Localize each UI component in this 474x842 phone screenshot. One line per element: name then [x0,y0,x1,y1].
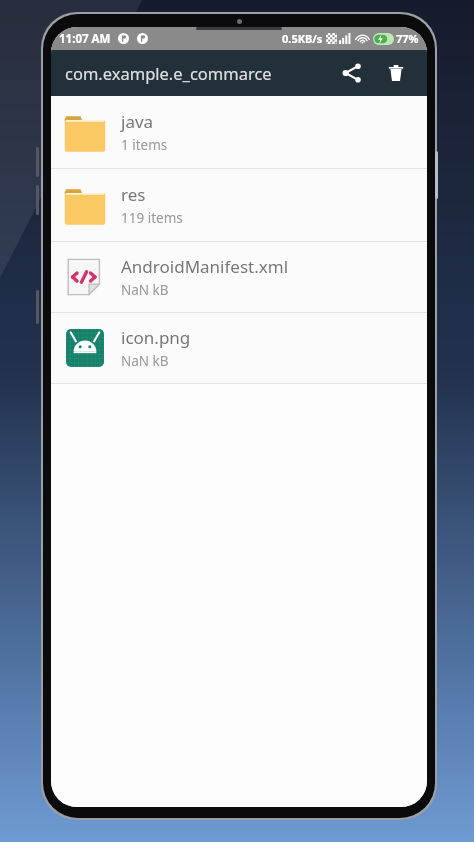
staticText: res [121,183,146,206]
staticText: 11:07 AM [59,31,111,47]
staticText: 77% [396,31,419,46]
button[interactable]: res [51,169,427,241]
staticText: 1 items [121,136,168,154]
button[interactable]: java [51,96,427,168]
staticText: 0.5KB/s [282,31,323,46]
button[interactable]: icon.png [51,313,427,383]
staticText: 119 items [121,209,183,227]
staticText: java [121,110,154,133]
staticText: NaN kB [121,352,169,370]
staticText: AndroidManifest.xml [121,255,289,278]
staticText: icon.png [121,326,191,349]
staticText: com.example.e_commarce [65,62,333,84]
button[interactable]: AndroidManifest.xml [51,242,427,312]
button[interactable]: Delete [377,54,415,92]
button[interactable]: Share [333,54,371,92]
staticText: NaN kB [121,281,169,299]
